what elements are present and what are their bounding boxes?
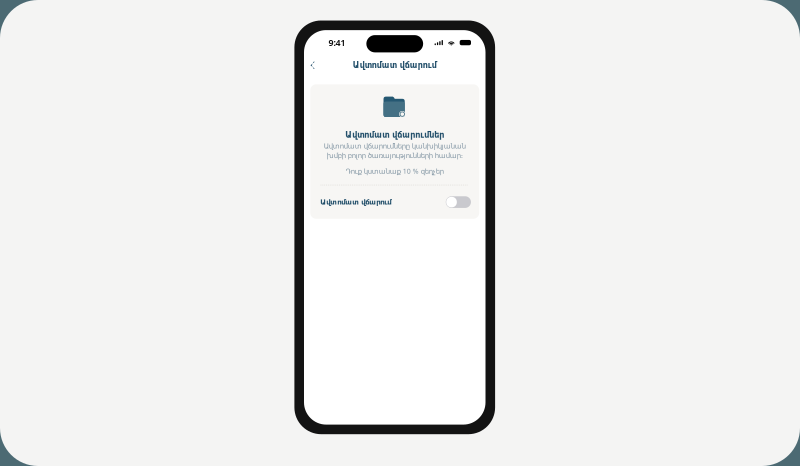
staticText: Դուք կստանաք 10 % զեղչեր	[346, 166, 444, 176]
staticText: Ավտոմատ վճարում	[320, 198, 391, 206]
staticText: Ավտոմատ վճարումներ	[345, 130, 444, 140]
button[interactable]: Back	[302, 55, 323, 75]
staticText: 9:41	[328, 37, 345, 49]
staticText: խմբի բոլոր ծառայությունների համար։	[327, 151, 463, 160]
staticText: Ավտոմատ վճարումները կանխիկյանան	[324, 142, 466, 150]
staticText: Ավտոմատ վճարում	[353, 61, 437, 70]
button[interactable]: Ավտոմատ վճարում	[446, 195, 471, 209]
